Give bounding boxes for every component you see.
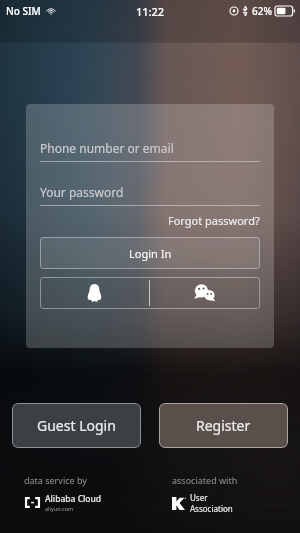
button[interactable]: Guest Login xyxy=(12,403,141,448)
button[interactable]: Login In xyxy=(40,237,260,269)
button[interactable]: Sign in with QQ xyxy=(40,277,149,309)
button[interactable]: Register xyxy=(159,403,288,448)
staticText: 62% xyxy=(252,4,272,18)
staticText: data service by xyxy=(24,474,87,486)
staticText: No SIM xyxy=(6,4,41,18)
staticText: Your password xyxy=(40,184,124,200)
staticText: Register xyxy=(196,416,251,435)
staticText: Association xyxy=(190,503,233,514)
staticText: Login In xyxy=(129,246,172,261)
staticText: 11:22 xyxy=(136,4,165,19)
staticText: Phone number or email xyxy=(40,140,174,156)
button[interactable]: Sign in with WeChat xyxy=(150,277,260,309)
staticText: associated with xyxy=(172,474,238,486)
button[interactable]: Forgot password? xyxy=(168,213,260,228)
staticText: User xyxy=(190,492,208,503)
staticText: aliyun.com xyxy=(45,505,74,512)
staticText: Guest Login xyxy=(37,416,116,435)
staticText: Alibaba Cloud xyxy=(45,493,102,505)
